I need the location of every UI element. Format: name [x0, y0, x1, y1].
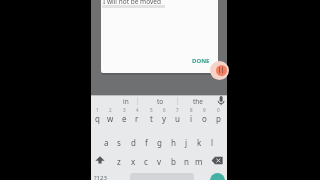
button[interactable]: i [179, 111, 203, 125]
button[interactable]: k [187, 135, 211, 149]
button[interactable]: in [114, 94, 138, 108]
button[interactable]: e [112, 111, 136, 125]
staticText: j [185, 137, 188, 148]
button[interactable]: v [147, 154, 171, 168]
button[interactable]: r [125, 111, 149, 125]
button[interactable]: s [107, 135, 131, 149]
button[interactable]: w [98, 111, 122, 125]
button[interactable]: z [107, 154, 131, 168]
staticText: 0 [217, 107, 220, 113]
staticText: 8 [190, 107, 193, 113]
staticText: to [157, 97, 164, 106]
button[interactable] [216, 65, 227, 76]
staticText: i [190, 113, 193, 124]
button[interactable] [216, 95, 226, 106]
button[interactable]: h [161, 135, 185, 149]
button[interactable]: x [121, 154, 145, 168]
staticText: t [150, 113, 153, 124]
staticText: I will not be moved [103, 0, 161, 6]
button[interactable]: n [174, 154, 198, 168]
button[interactable] [211, 156, 224, 166]
staticText: y [162, 113, 167, 124]
button[interactable]: t [139, 111, 163, 125]
staticText: x [131, 156, 136, 167]
button[interactable]: l [200, 135, 224, 149]
staticText: 5 [150, 107, 153, 113]
button[interactable]: m [187, 154, 211, 168]
staticText: k [197, 137, 202, 148]
staticText: v [157, 156, 162, 167]
button[interactable]: d [121, 135, 145, 149]
staticText: 2 [109, 107, 112, 113]
staticText: s [117, 137, 121, 148]
staticText: h [171, 137, 176, 148]
button[interactable]: f [134, 135, 158, 149]
button[interactable]: j [174, 135, 198, 149]
staticText: ?123 [94, 174, 107, 180]
staticText: b [171, 156, 176, 167]
staticText: 7 [176, 107, 179, 113]
staticText: w [107, 113, 114, 124]
staticText: f [145, 137, 148, 148]
staticText: 3 [123, 107, 126, 113]
button[interactable]: q [85, 111, 109, 125]
staticText: e [122, 113, 127, 124]
button[interactable]: g [147, 135, 171, 149]
button[interactable]: to [148, 94, 172, 108]
staticText: 6 [163, 107, 166, 113]
staticText: a [104, 137, 109, 148]
staticText: n [184, 156, 189, 167]
staticText: l [211, 137, 214, 148]
staticText: p [216, 113, 221, 124]
staticText: u [175, 113, 180, 124]
button[interactable]: a [94, 135, 118, 149]
button[interactable]: c [134, 154, 158, 168]
button[interactable]: p [206, 111, 230, 125]
button[interactable]: the [186, 94, 210, 108]
staticText: r [135, 113, 139, 124]
staticText: m [195, 156, 203, 167]
staticText: z [117, 156, 121, 167]
staticText: g [157, 137, 162, 148]
staticText: o [202, 113, 207, 124]
button[interactable]: ?123 [88, 171, 112, 180]
staticText: c [144, 156, 148, 167]
button[interactable] [210, 173, 225, 180]
staticText: DONE [192, 57, 210, 65]
button[interactable]: o [192, 111, 216, 125]
staticText: q [95, 113, 100, 124]
staticText: 9 [203, 107, 206, 113]
button[interactable] [94, 155, 106, 166]
button[interactable]: DONE [185, 54, 217, 68]
staticText: 4 [136, 107, 139, 113]
button[interactable]: b [161, 154, 185, 168]
button[interactable]: y [152, 111, 176, 125]
button[interactable]: u [165, 111, 189, 125]
staticText: d [131, 137, 136, 148]
staticText: in [123, 97, 129, 106]
staticText: 1 [96, 107, 99, 113]
staticText: the [193, 97, 204, 106]
